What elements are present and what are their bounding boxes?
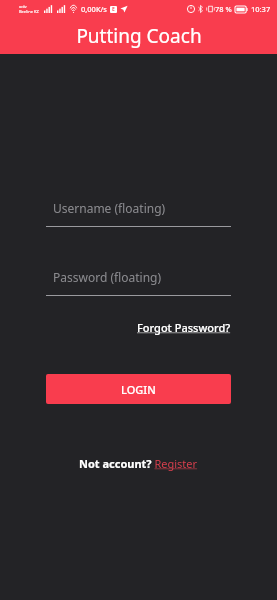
- button[interactable]: LOGIN: [46, 374, 231, 404]
- staticText: Password (floating): [53, 269, 162, 285]
- staticText: E: [112, 6, 115, 13]
- button[interactable]: Not account? Register: [79, 454, 198, 473]
- staticText: activ: [19, 4, 27, 9]
- button[interactable]: Username (floating): [46, 197, 231, 227]
- staticText: 0,00K/s: [81, 4, 107, 14]
- staticText: Forgot Password?: [137, 320, 231, 335]
- staticText: Not account? Register: [79, 456, 198, 471]
- staticText: 10:37: [251, 4, 271, 14]
- staticText: Username (floating): [53, 200, 166, 216]
- staticText: Beeline KZ: [19, 9, 39, 14]
- button[interactable]: Forgot Password?: [137, 318, 231, 337]
- staticText: Putting Coach: [76, 23, 202, 49]
- staticText: LOGIN: [121, 382, 156, 397]
- staticText: 78 %: [215, 4, 232, 14]
- button[interactable]: Password (floating): [46, 266, 231, 296]
